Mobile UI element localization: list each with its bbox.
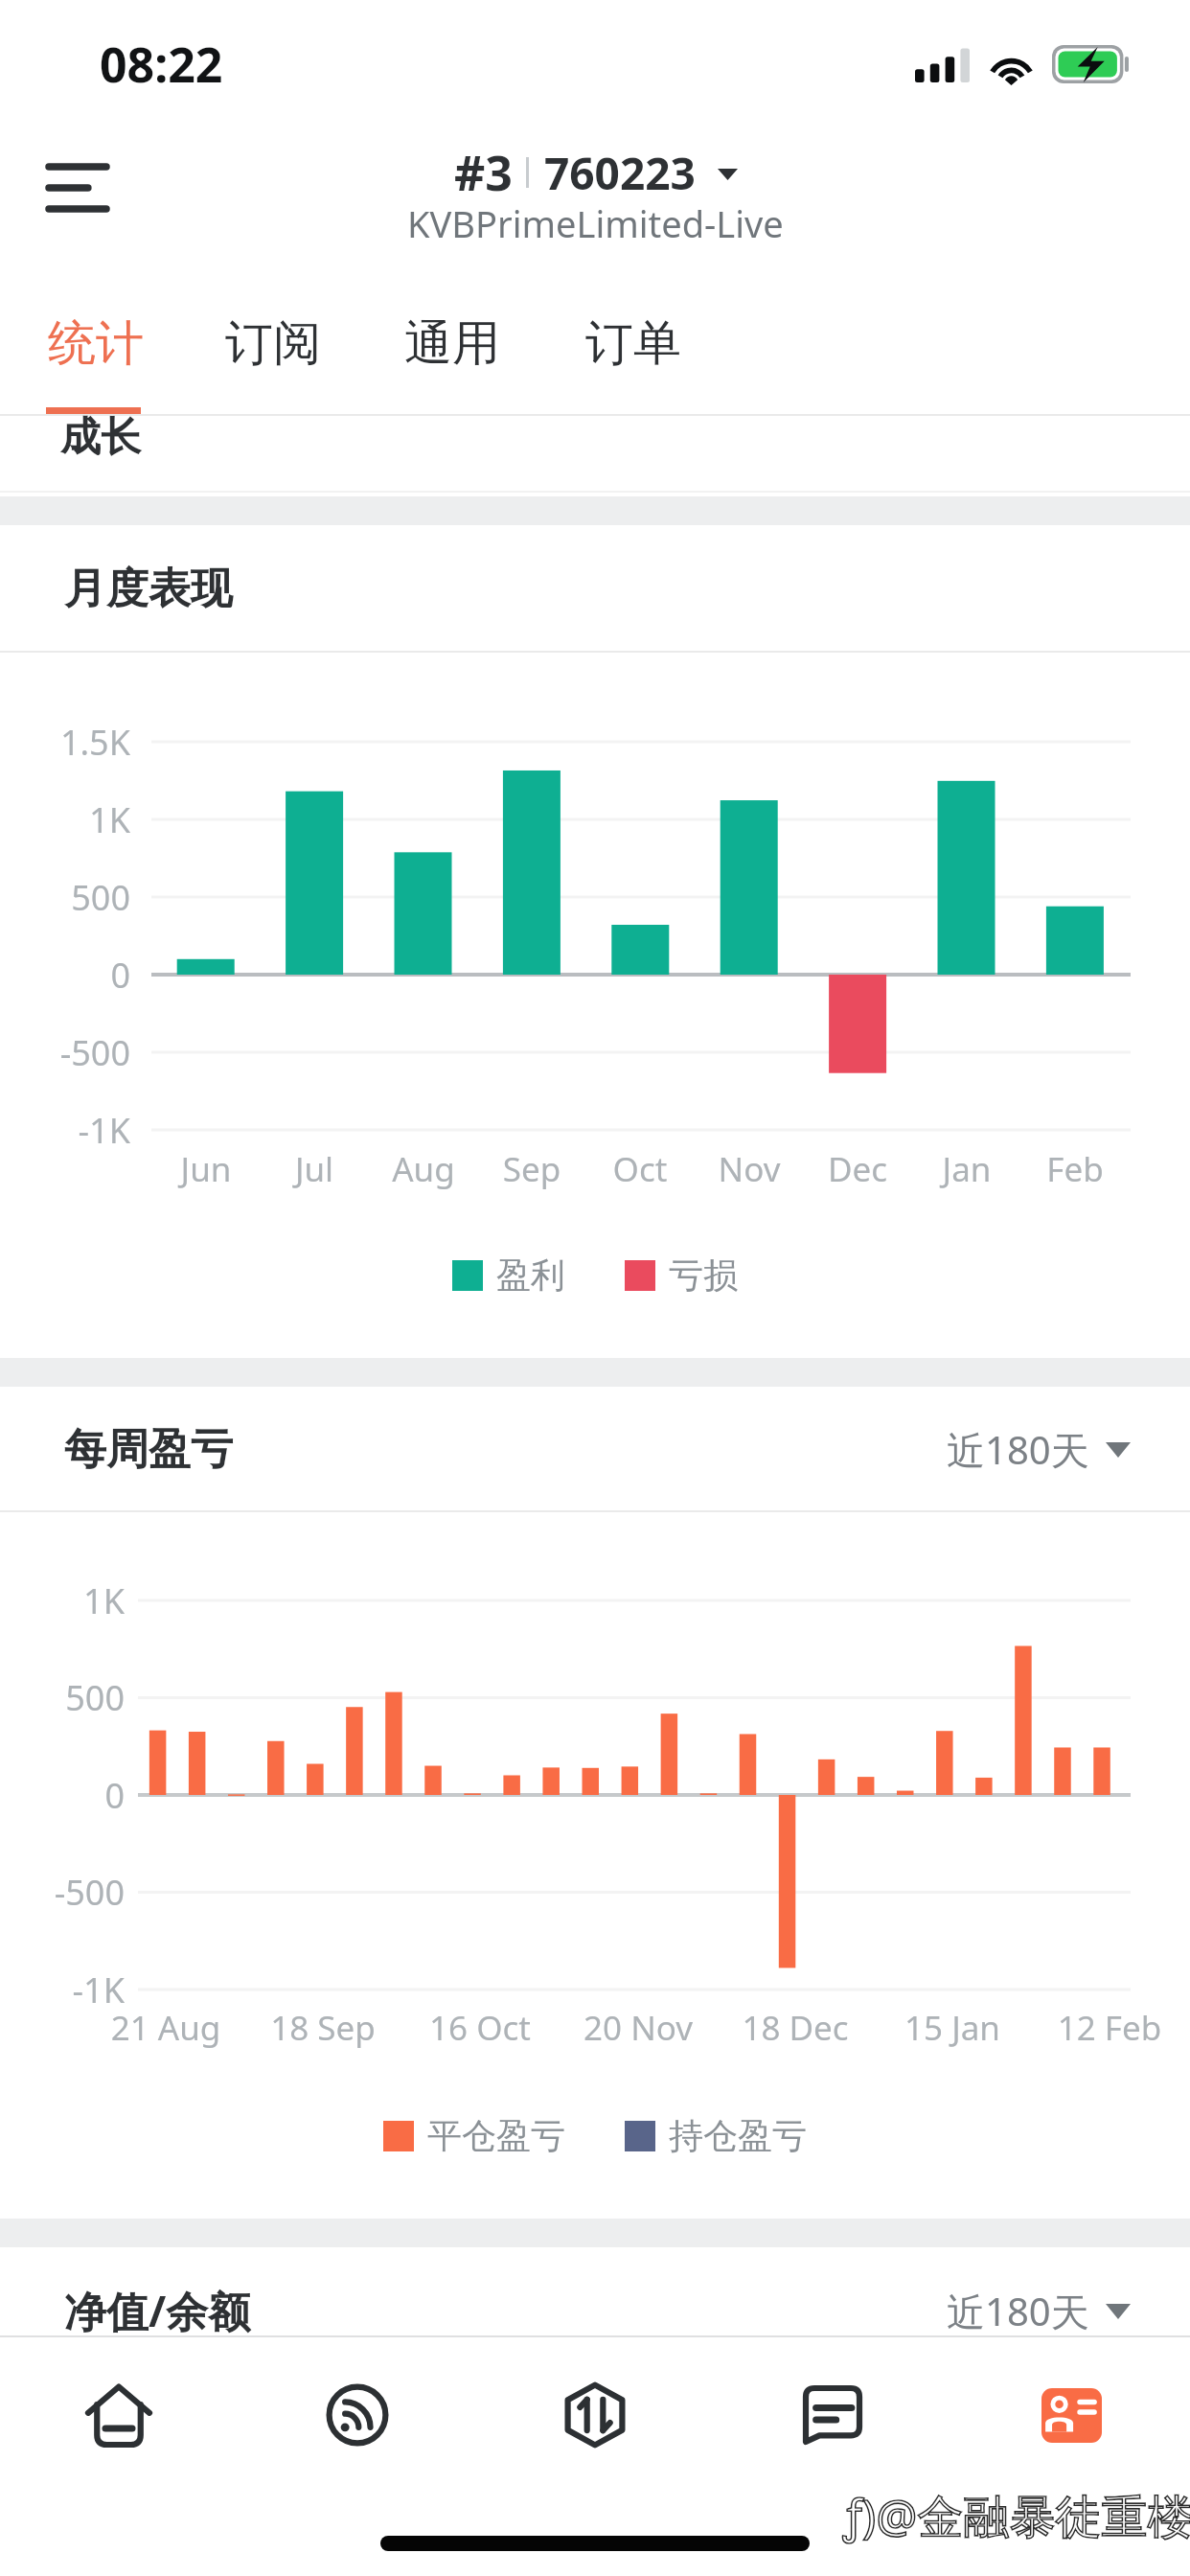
staticText: 20 Nov [523, 2005, 753, 2051]
button[interactable]: 统计 [30, 287, 162, 399]
staticText: 平仓盈亏 [427, 2114, 565, 2157]
staticText: 0 [0, 1772, 125, 1819]
staticText: 18 Dec [680, 2005, 910, 2051]
staticText: 1K [0, 796, 130, 843]
staticText: 500 [0, 1674, 125, 1721]
staticText: 1.5K [0, 719, 130, 766]
button[interactable]: Trade [490, 2356, 700, 2474]
staticText: -1K [0, 1107, 130, 1154]
button[interactable]: Signals [252, 2356, 463, 2474]
button[interactable]: Home [13, 2356, 224, 2474]
staticText: 18 Sep [208, 2005, 438, 2051]
staticText: 500 [0, 874, 130, 921]
staticText: KVBPrimeLimited-Live [407, 198, 784, 248]
staticText: #3 [454, 140, 513, 205]
staticText: 16 Oct [365, 2005, 595, 2051]
staticText: 近180天 [947, 1423, 1089, 1476]
staticText: -500 [0, 1029, 130, 1076]
staticText: 持仓盈亏 [669, 2114, 807, 2157]
staticText: Jul [247, 1146, 381, 1192]
staticText: 亏损 [669, 1253, 738, 1297]
staticText: 1K [0, 1577, 125, 1624]
staticText: Dec [790, 1146, 925, 1192]
button[interactable]: 订单 [567, 287, 699, 399]
staticText: -1K [0, 1966, 125, 2013]
staticText: 12 Feb [995, 2005, 1190, 2051]
staticText: Feb [1008, 1146, 1142, 1192]
button[interactable]: 订阅 [207, 287, 339, 399]
staticText: 订阅 [225, 313, 321, 374]
staticText: 760223 [544, 143, 696, 203]
button[interactable]: Menu [20, 130, 135, 245]
staticText: 15 Jan [837, 2005, 1067, 2051]
staticText: 近180天 [947, 2285, 1089, 2337]
staticText: ƒ)@金融暴徒重楼 [843, 2484, 1190, 2547]
staticText: Aug [356, 1146, 491, 1192]
staticText: 21 Aug [51, 2005, 281, 2051]
staticText: Jan [900, 1146, 1034, 1192]
staticText: 每周盈亏 [64, 1423, 233, 1476]
staticText: 成长 [60, 412, 141, 463]
button[interactable]: 通用 [386, 287, 518, 399]
staticText: Oct [573, 1146, 707, 1192]
staticText: Jun [139, 1146, 273, 1192]
staticText: 净值/余额 [64, 2282, 251, 2339]
staticText: 订单 [585, 313, 681, 374]
staticText: 08:22 [100, 32, 223, 97]
staticText: 月度表现 [64, 563, 233, 615]
staticText: -500 [0, 1869, 125, 1916]
staticText: 0 [0, 952, 130, 999]
button[interactable]: 近180天 [947, 2285, 1131, 2337]
staticText: 通用 [404, 313, 500, 374]
staticText: Nov [682, 1146, 816, 1192]
button[interactable]: Profile [966, 2356, 1177, 2474]
staticText: Sep [465, 1146, 599, 1192]
button[interactable]: 近180天 [947, 1423, 1131, 1476]
button[interactable]: Chat [727, 2356, 938, 2474]
staticText: 统计 [48, 313, 144, 374]
staticText: 盈利 [496, 1253, 565, 1297]
